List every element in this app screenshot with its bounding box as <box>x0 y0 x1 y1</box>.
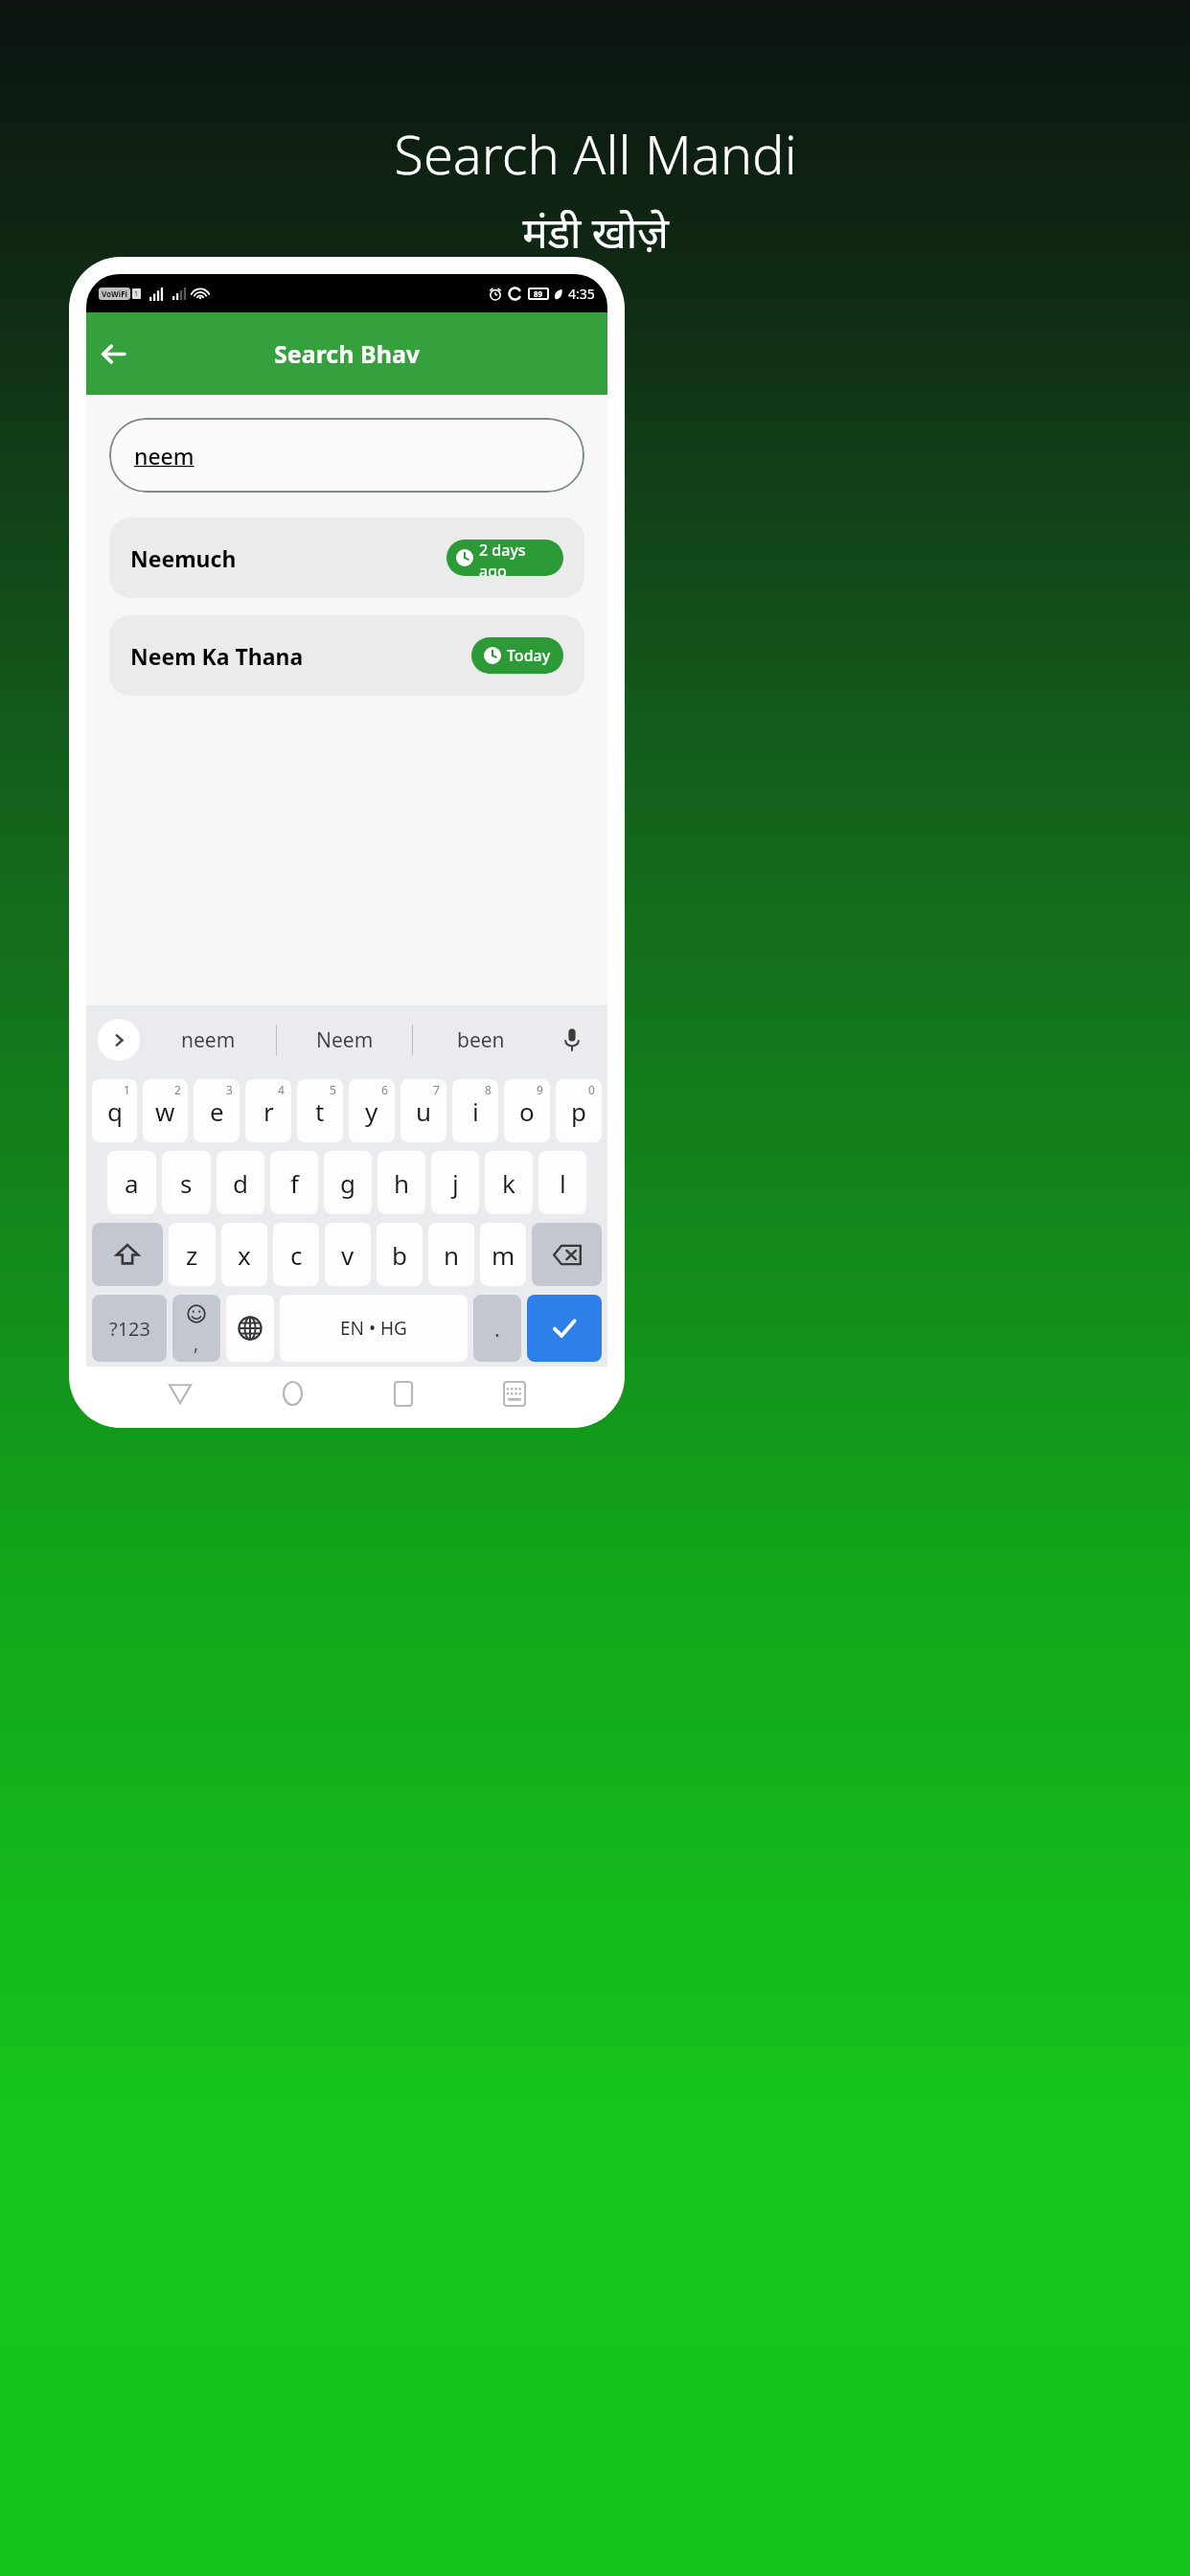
staticText: m <box>492 1238 515 1272</box>
button[interactable]: n <box>428 1223 474 1286</box>
staticText: h <box>394 1166 410 1200</box>
button[interactable]: g <box>324 1151 372 1214</box>
button[interactable]: d <box>217 1151 264 1214</box>
staticText: q <box>107 1094 123 1128</box>
button[interactable]: Backspace <box>532 1223 602 1286</box>
staticText: a <box>125 1166 139 1200</box>
staticText: 7 <box>433 1082 440 1097</box>
staticText: y <box>365 1094 378 1128</box>
button[interactable]: w <box>143 1079 188 1142</box>
staticText: Today <box>507 645 551 666</box>
staticText: ?123 <box>109 1316 150 1342</box>
button[interactable]: ?123 <box>92 1295 167 1362</box>
button[interactable]: s <box>162 1151 211 1214</box>
button[interactable]: Shift <box>92 1223 163 1286</box>
button[interactable]: q <box>92 1079 137 1142</box>
staticText: 4:35 <box>568 285 595 303</box>
staticText: t <box>315 1094 325 1128</box>
staticText: k <box>502 1166 515 1200</box>
staticText: 2 days ago <box>479 540 554 576</box>
button[interactable]: EN • HG <box>280 1295 468 1362</box>
staticText: Search All Mandi <box>394 117 797 190</box>
staticText: o <box>519 1094 535 1128</box>
staticText: n <box>444 1238 460 1272</box>
staticText: Search Bhav <box>274 337 421 370</box>
button[interactable]: k <box>485 1151 533 1214</box>
button[interactable]: . <box>473 1295 521 1362</box>
staticText: v <box>341 1238 355 1272</box>
staticText: 8 <box>485 1082 492 1097</box>
button[interactable]: x <box>221 1223 267 1286</box>
button[interactable]: Back <box>86 327 140 380</box>
staticText: 1 <box>124 1082 130 1097</box>
staticText: z <box>186 1238 198 1272</box>
button[interactable]: Emoji <box>172 1295 220 1362</box>
button[interactable]: m <box>480 1223 526 1286</box>
staticText: i <box>472 1094 479 1128</box>
button[interactable]: c <box>273 1223 319 1286</box>
button[interactable]: Voice input <box>548 1005 596 1074</box>
staticText: . <box>494 1314 500 1343</box>
button[interactable]: p <box>556 1079 602 1142</box>
button[interactable]: u <box>400 1079 446 1142</box>
staticText: p <box>571 1094 586 1128</box>
button[interactable]: t <box>297 1079 343 1142</box>
button[interactable]: Hide keyboard <box>484 1367 545 1420</box>
button[interactable]: Home <box>262 1367 323 1420</box>
button[interactable]: v <box>325 1223 371 1286</box>
button[interactable]: neem <box>109 418 584 493</box>
staticText: Neemuch <box>130 543 237 573</box>
staticText: Neem <box>316 1026 374 1054</box>
button[interactable]: r <box>245 1079 291 1142</box>
staticText: w <box>155 1094 175 1128</box>
staticText: EN • HG <box>340 1316 407 1341</box>
staticText: neem <box>181 1026 236 1054</box>
button[interactable]: Neem Ka Thana <box>109 615 584 696</box>
staticText: 2 <box>174 1082 181 1097</box>
button[interactable]: o <box>504 1079 550 1142</box>
staticText: 6 <box>381 1082 388 1097</box>
staticText: 4 <box>278 1082 285 1097</box>
staticText: s <box>180 1166 193 1200</box>
button[interactable]: been <box>413 1005 548 1074</box>
staticText: r <box>263 1094 274 1128</box>
staticText: l <box>560 1166 566 1200</box>
button[interactable]: Search <box>527 1295 602 1362</box>
staticText: j <box>452 1166 459 1200</box>
button[interactable]: e <box>194 1079 240 1142</box>
staticText: d <box>233 1166 248 1200</box>
button[interactable]: Neem <box>277 1005 412 1074</box>
button[interactable]: y <box>349 1079 395 1142</box>
staticText: , <box>194 1331 199 1356</box>
staticText: 1 <box>134 289 139 299</box>
staticText: x <box>238 1238 251 1272</box>
staticText: 3 <box>226 1082 233 1097</box>
staticText: b <box>392 1238 407 1272</box>
staticText: 5 <box>330 1082 336 1097</box>
button[interactable]: i <box>452 1079 498 1142</box>
staticText: been <box>457 1026 505 1054</box>
staticText: neem <box>134 441 195 471</box>
button[interactable]: b <box>377 1223 423 1286</box>
staticText: 9 <box>537 1082 543 1097</box>
button[interactable]: Expand <box>98 1019 140 1061</box>
button[interactable]: j <box>431 1151 479 1214</box>
button[interactable]: Back <box>149 1367 211 1420</box>
button[interactable]: l <box>538 1151 586 1214</box>
button[interactable]: Neemuch <box>109 517 584 598</box>
button[interactable]: Change language <box>226 1295 274 1362</box>
staticText: 0 <box>588 1082 595 1097</box>
staticText: e <box>210 1094 224 1128</box>
staticText: c <box>290 1238 303 1272</box>
staticText: g <box>340 1166 355 1200</box>
button[interactable]: neem <box>140 1005 276 1074</box>
button[interactable]: h <box>378 1151 425 1214</box>
staticText: f <box>290 1166 299 1200</box>
staticText: u <box>416 1094 432 1128</box>
button[interactable]: f <box>270 1151 318 1214</box>
staticText: 89 <box>534 288 543 299</box>
staticText: VoWiFi <box>102 288 127 299</box>
button[interactable]: Recents <box>373 1367 434 1420</box>
button[interactable]: z <box>169 1223 216 1286</box>
button[interactable]: a <box>107 1151 156 1214</box>
